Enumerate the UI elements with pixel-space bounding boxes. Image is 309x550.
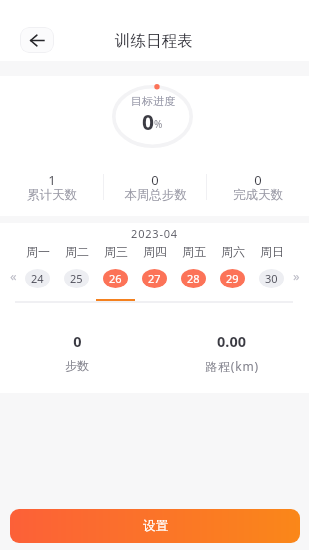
staticText: «	[10, 267, 17, 285]
staticText: 路程(km)	[205, 358, 259, 374]
button[interactable]: 0	[0, 331, 154, 373]
staticText: 周二	[65, 244, 89, 259]
button[interactable]: 0	[207, 171, 309, 205]
button[interactable]: 25	[57, 269, 96, 301]
button[interactable]: 0.00	[154, 331, 309, 374]
button[interactable]: 28	[174, 269, 213, 301]
staticText: 24	[31, 271, 44, 286]
staticText: 累计天数	[27, 187, 77, 203]
staticText: 0	[73, 331, 82, 351]
staticText: 周日	[260, 244, 284, 259]
staticText: 完成天数	[233, 187, 283, 203]
staticText: 本周总步数	[124, 187, 187, 203]
button[interactable]: 设置	[10, 509, 300, 543]
staticText: 周一	[26, 244, 50, 259]
button[interactable]: 26	[96, 269, 135, 301]
staticText: %	[154, 117, 163, 131]
staticText: 27	[148, 271, 161, 286]
staticText: 周五	[182, 244, 206, 259]
button[interactable]: 30	[252, 269, 291, 301]
staticText: 1	[48, 171, 56, 189]
staticText: 29	[226, 271, 239, 286]
staticText: 0	[151, 171, 159, 189]
button[interactable]: 0	[104, 171, 206, 205]
staticText: 30	[265, 271, 278, 286]
staticText: 0	[254, 171, 262, 189]
staticText: 25	[70, 271, 83, 286]
button[interactable]: 24	[18, 269, 57, 301]
button[interactable]: 29	[213, 269, 252, 301]
staticText: 周四	[143, 244, 167, 259]
staticText: 0.00	[217, 331, 246, 351]
staticText: 28	[187, 271, 200, 286]
staticText: 2023-04	[131, 226, 178, 241]
button[interactable]: 27	[135, 269, 174, 301]
button[interactable]: Next week	[287, 267, 305, 285]
staticText: 0	[142, 108, 155, 137]
staticText: 设置	[143, 518, 168, 534]
button[interactable]: 1	[0, 171, 103, 205]
staticText: 目标进度	[131, 94, 175, 108]
button[interactable]: Back	[20, 27, 54, 53]
staticText: 26	[109, 271, 122, 286]
staticText: 周三	[104, 244, 128, 259]
staticText: »	[293, 267, 300, 285]
button[interactable]: Previous week	[4, 267, 22, 285]
staticText: 步数	[65, 358, 89, 373]
staticText: 周六	[221, 244, 245, 259]
staticText: 训练日程表	[115, 31, 193, 51]
